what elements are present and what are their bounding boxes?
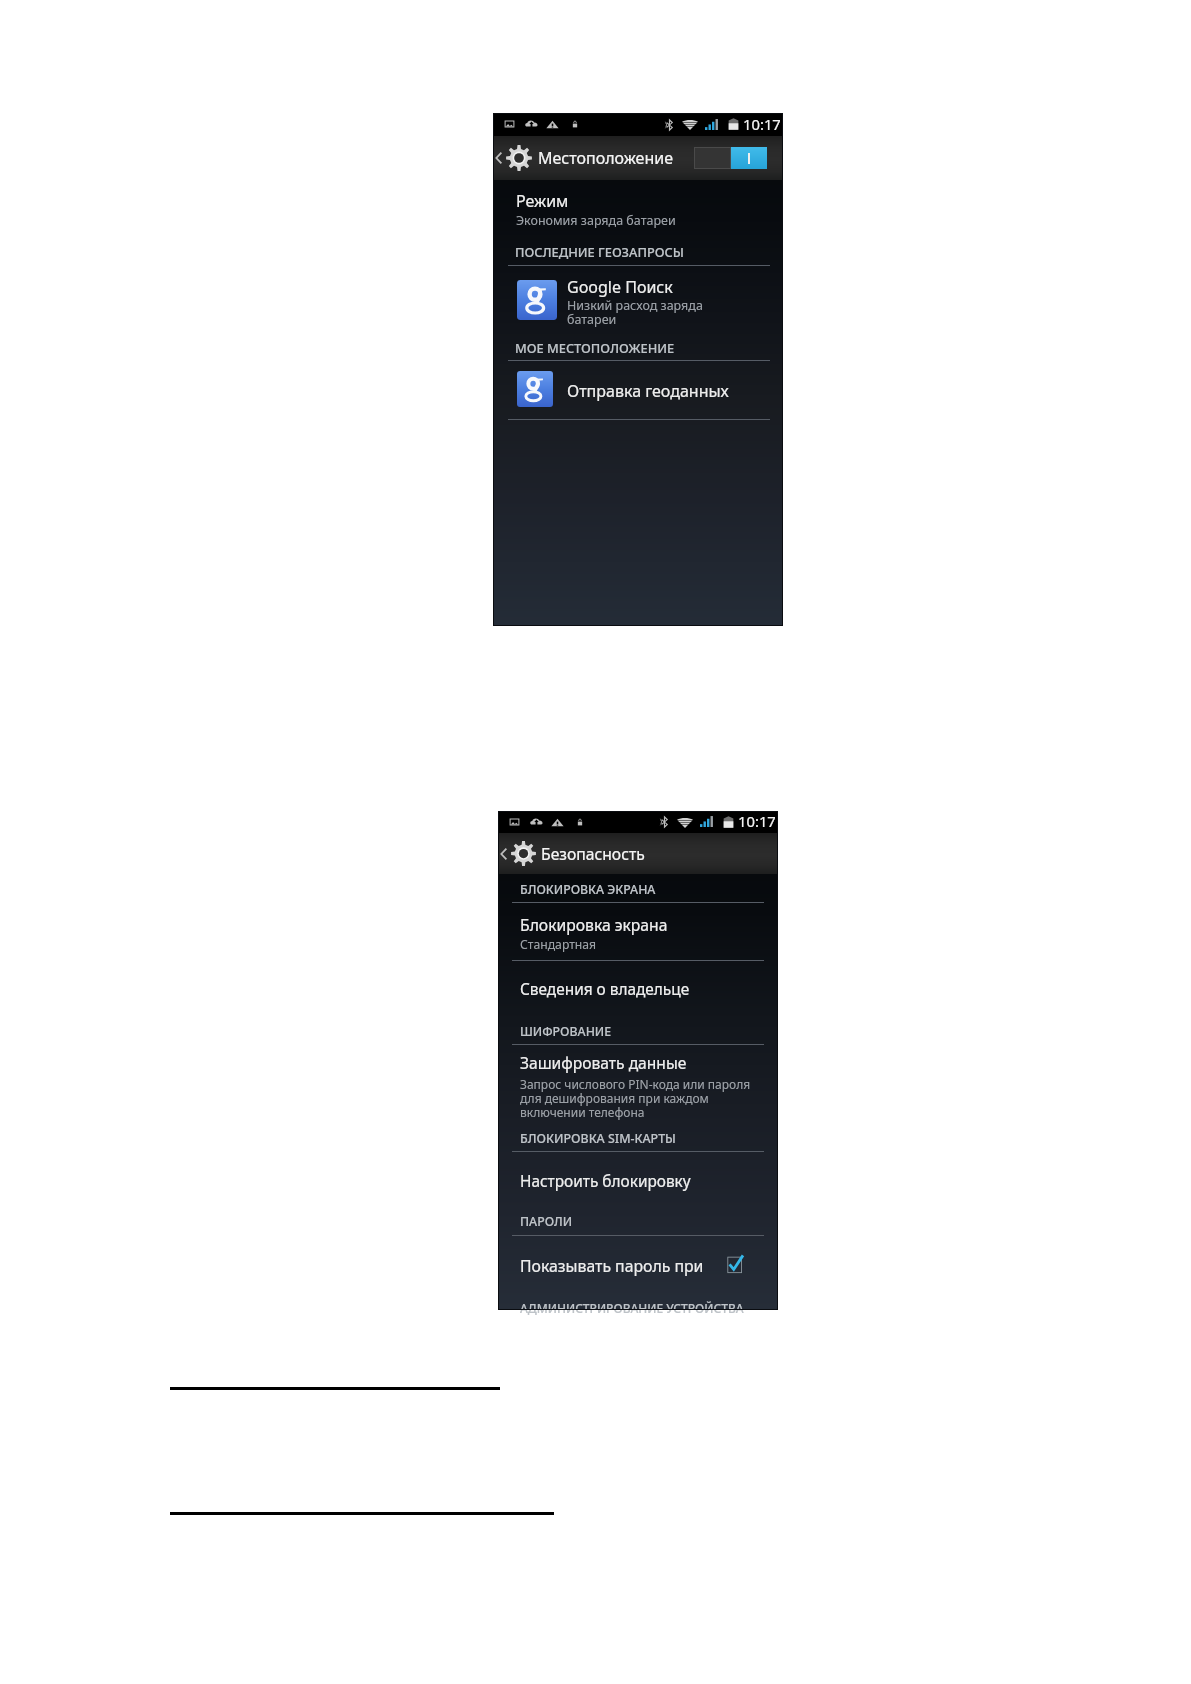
staticText: Экономия заряда батареи xyxy=(516,212,676,229)
staticText: Блокировка экрана xyxy=(520,914,668,935)
staticText: 10:17 xyxy=(738,811,776,831)
button[interactable] xyxy=(493,363,783,419)
button[interactable] xyxy=(498,1152,778,1208)
staticText: 10:17 xyxy=(743,114,781,134)
staticText: Местоположение xyxy=(538,147,673,169)
staticText: ПАРОЛИ xyxy=(520,1213,573,1230)
button[interactable] xyxy=(498,904,778,954)
button[interactable] xyxy=(498,1021,778,1099)
button[interactable] xyxy=(493,270,783,332)
staticText: Низкий расход заряда батареи xyxy=(567,297,707,327)
button[interactable]: Back to Settings xyxy=(493,136,589,180)
staticText: Настроить блокировку xyxy=(520,1171,691,1192)
button[interactable] xyxy=(493,180,783,239)
staticText: Запрос числового PIN-кода или пароля для… xyxy=(520,1076,752,1120)
staticText: Зашифровать данные xyxy=(520,1052,687,1073)
staticText: Безопасность xyxy=(541,843,645,864)
staticText: Режим xyxy=(516,190,569,212)
staticText: БЛОКИРОВКА SIM-КАРТЫ xyxy=(520,1130,676,1147)
button[interactable]: Back to Settings xyxy=(498,833,594,874)
staticText: Google Поиск xyxy=(567,276,673,298)
button[interactable] xyxy=(498,1237,778,1287)
staticText: ПОСЛЕДНИЕ ГЕОЗАПРОСЫ xyxy=(515,243,684,260)
staticText: Отправка геоданных xyxy=(567,380,729,402)
button[interactable]: Location on/off switch xyxy=(694,147,767,169)
staticText: АДМИНИСТРИРОВАНИЕ УСТРОЙСТВА xyxy=(520,1300,744,1316)
staticText: Сведения о владельце xyxy=(520,979,690,1000)
staticText: ШИФРОВАНИЕ xyxy=(520,1023,612,1040)
button[interactable] xyxy=(498,956,778,1012)
staticText: Показывать пароль при xyxy=(520,1255,704,1277)
staticText: БЛОКИРОВКА ЭКРАНА xyxy=(520,881,656,898)
staticText: МОЕ МЕСТОПОЛОЖЕНИЕ xyxy=(515,339,675,356)
staticText: Стандартная xyxy=(520,936,597,953)
